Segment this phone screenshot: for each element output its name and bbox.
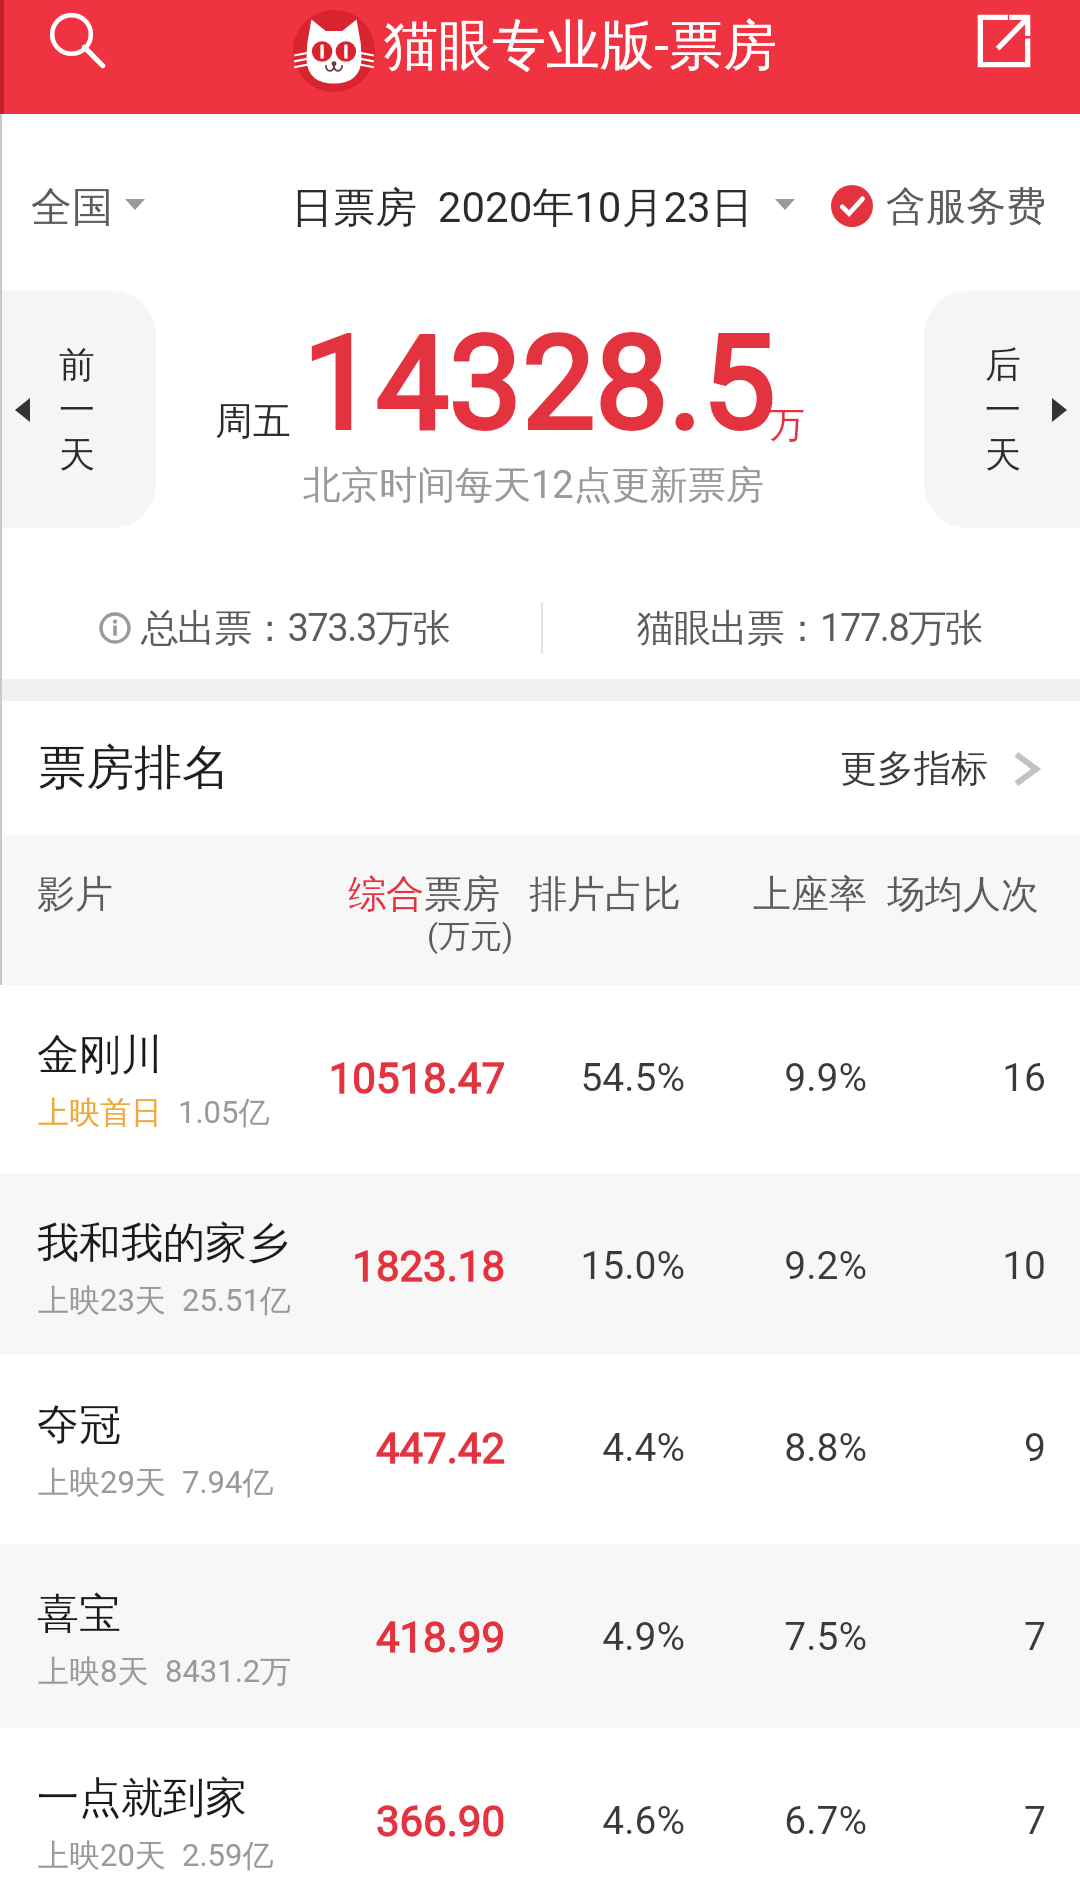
staticText: 场均人次 [887,870,1039,918]
staticText: 4.6% [602,1798,685,1844]
staticText: 1823.18 [352,1242,505,1291]
staticText: 7 [1024,1798,1046,1844]
staticText: 447.42 [375,1424,505,1473]
staticText: 7 [1024,1614,1046,1660]
staticText: 15.0% [580,1243,685,1289]
staticText: 418.99 [375,1613,505,1662]
staticText: 6.7% [784,1798,867,1844]
button[interactable]: 喜宝 [0,1544,1080,1728]
staticText: 综合 [348,870,424,918]
staticText: 上映29天 [38,1463,166,1502]
staticText: 上映20天 [38,1836,166,1875]
staticText: 上映8天 [38,1652,149,1691]
staticText: 万 [769,402,805,447]
staticText: 一 [59,387,95,432]
staticText: 8431.2万 [165,1652,292,1691]
button[interactable]: 夺冠 [0,1355,1080,1544]
staticText: 影片 [37,870,113,918]
staticText: 10 [1002,1243,1046,1289]
staticText: 7.94亿 [182,1463,274,1502]
staticText: 上映首日 [38,1093,162,1132]
staticText: 排片占比 [529,870,681,918]
staticText: 10518.47 [328,1054,505,1103]
staticText: 前 [59,342,95,387]
staticText: 票房 [424,870,500,918]
button[interactable]: 全国 [31,182,145,234]
button[interactable]: 金刚川 [0,985,1080,1173]
staticText: 我和我的家乡 [37,1217,289,1270]
button[interactable]: 含服务费 [831,181,1046,231]
staticText: 1.05亿 [178,1093,270,1132]
staticText: 金刚川 [37,1029,163,1082]
staticText: 天 [985,432,1021,477]
button[interactable]: 日票房 2020年10月23日 [291,182,795,235]
staticText: 8.8% [784,1425,867,1471]
staticText: 16 [1002,1055,1046,1101]
button[interactable]: Search [23,0,129,93]
button[interactable]: 前 [0,291,156,528]
staticText: 周五 [215,397,291,445]
staticText: 14328.5 [303,307,776,459]
staticText: 后 [985,342,1021,387]
staticText: 猫眼出票：177.8万张 [637,604,982,652]
staticText: 9.2% [784,1243,867,1289]
staticText: 7.5% [784,1614,867,1660]
staticText: 366.90 [375,1797,505,1846]
staticText: 北京时间每天12点更新票房 [303,461,764,509]
staticText: 日票房 2020年10月23日 [291,182,753,235]
button[interactable]: 我和我的家乡 [0,1173,1080,1355]
button[interactable]: Open in browser [951,0,1057,94]
button[interactable]: 后 [924,291,1080,528]
button[interactable]: 一点就到家 [0,1728,1080,1887]
staticText: (万元) [427,916,514,956]
staticText: 全国 [31,182,113,234]
staticText: 票房排名 [38,738,230,798]
staticText: 上座率 [753,870,867,918]
staticText: 猫眼专业版-票房 [384,12,777,80]
staticText: 夺冠 [37,1399,121,1452]
staticText: 9.9% [784,1055,867,1101]
staticText: 含服务费 [886,181,1046,231]
staticText: 9 [1024,1425,1046,1471]
staticText: 上映23天 [38,1281,166,1320]
staticText: 天 [59,432,95,477]
staticText: 更多指标 [840,745,988,792]
staticText: 4.4% [602,1425,685,1471]
staticText: 4.9% [602,1614,685,1660]
staticText: 总出票：373.3万张 [141,604,450,652]
button[interactable]: 更多指标 [840,745,1038,792]
staticText: 25.51亿 [182,1281,291,1320]
staticText: 喜宝 [37,1588,121,1641]
staticText: 一点就到家 [37,1772,247,1825]
staticText: 一 [985,387,1021,432]
staticText: 2.59亿 [182,1836,274,1875]
staticText: 54.5% [580,1055,685,1101]
